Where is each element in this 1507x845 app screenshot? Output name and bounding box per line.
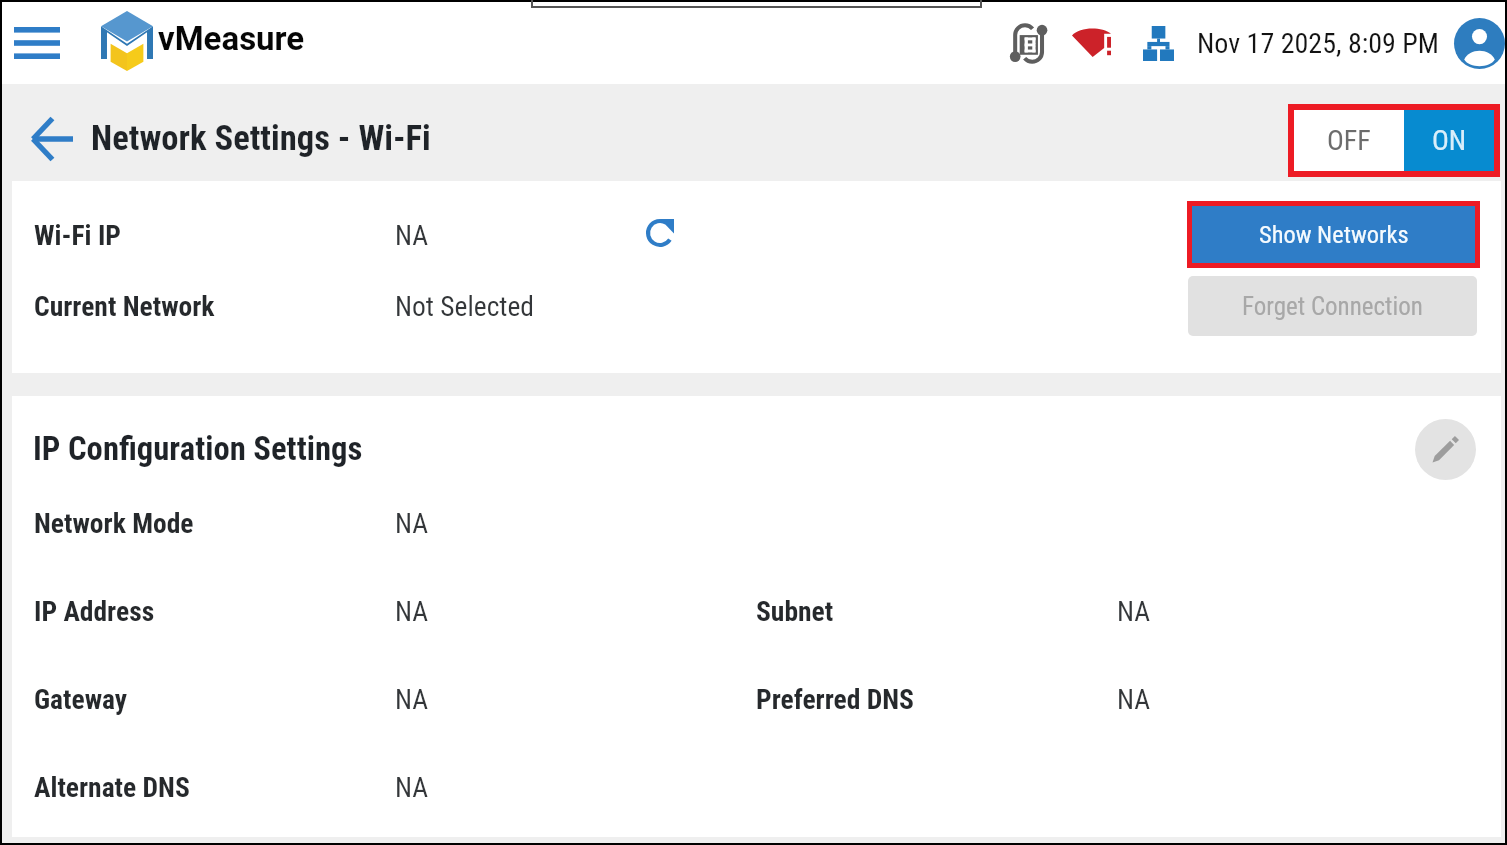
button[interactable]: OFF bbox=[1294, 110, 1404, 171]
button[interactable]: Scale bbox=[1008, 23, 1049, 64]
staticText: Preferred DNS bbox=[756, 683, 1117, 715]
staticText: NA bbox=[395, 219, 643, 251]
staticText: Nov 17 2025, 8:09 PM bbox=[1197, 27, 1439, 60]
staticText: Wi-Fi IP bbox=[34, 219, 395, 251]
staticText: NA bbox=[395, 683, 756, 715]
button[interactable]: Network bbox=[1143, 26, 1174, 61]
button[interactable]: Refresh bbox=[642, 215, 678, 251]
staticText: Not Selected bbox=[395, 290, 535, 322]
staticText: ON bbox=[1432, 124, 1467, 157]
staticText: NA bbox=[395, 595, 756, 627]
staticText: NA bbox=[1117, 683, 1317, 715]
staticText: NA bbox=[395, 771, 756, 803]
button[interactable]: Edit bbox=[1415, 419, 1476, 480]
staticText: Alternate DNS bbox=[34, 771, 395, 803]
staticText: Network Mode bbox=[34, 507, 395, 539]
staticText: Gateway bbox=[34, 683, 395, 715]
staticText: NA bbox=[395, 507, 756, 539]
staticText: vMeasure bbox=[158, 19, 305, 58]
staticText: OFF bbox=[1327, 124, 1371, 157]
button[interactable]: ON bbox=[1404, 110, 1494, 171]
staticText: NA bbox=[1117, 595, 1317, 627]
button[interactable]: Account bbox=[1454, 18, 1505, 69]
staticText: IP Address bbox=[34, 595, 395, 627]
button[interactable]: Show Networks bbox=[1192, 206, 1475, 263]
button[interactable]: Back bbox=[31, 118, 73, 160]
button[interactable]: Forget Connection bbox=[1188, 276, 1477, 336]
staticText: IP Configuration Settings bbox=[33, 430, 363, 468]
staticText: Subnet bbox=[756, 595, 1117, 627]
staticText: Current Network bbox=[34, 290, 395, 322]
button[interactable]: Menu bbox=[14, 20, 60, 66]
staticText: Forget Connection bbox=[1242, 292, 1423, 321]
button[interactable]: Wi-Fi status bbox=[1072, 27, 1111, 57]
staticText: Show Networks bbox=[1259, 220, 1409, 249]
staticText: Network Settings - Wi-Fi bbox=[91, 118, 431, 159]
